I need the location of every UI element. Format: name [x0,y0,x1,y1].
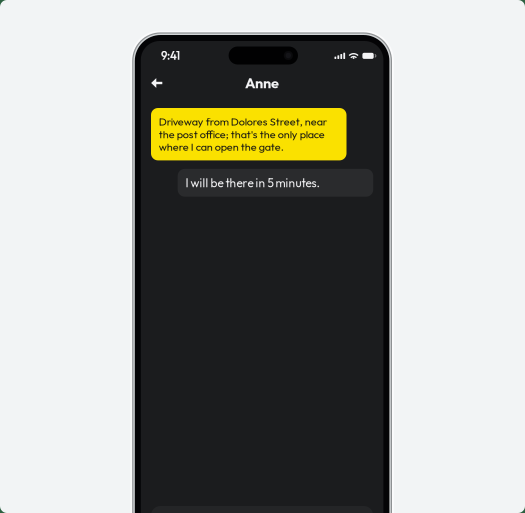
button[interactable]: I will be there in 5 minutes. [178,169,373,197]
staticText: Driveway from Dolores Street, near the p… [159,115,328,153]
button[interactable]: Driveway from Dolores Street, near the p… [151,108,346,160]
staticText: Anne [245,75,279,91]
button[interactable]: Back [144,71,170,95]
staticText: I will be there in 5 minutes. [185,176,319,190]
staticText: 9:41 [161,49,180,62]
